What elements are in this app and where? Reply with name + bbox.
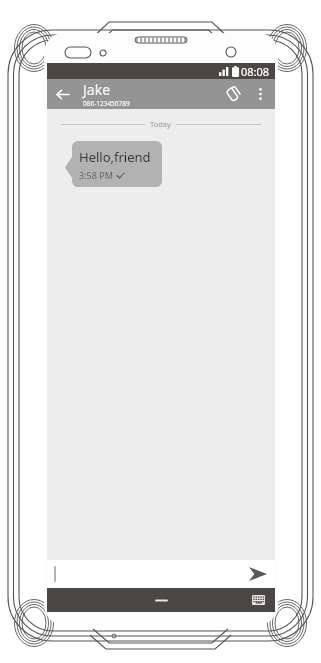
button[interactable]: Back [47, 79, 77, 109]
staticText: Today [150, 119, 171, 129]
button[interactable]: Keyboard [247, 589, 269, 611]
staticText: 086-123456789 [83, 99, 130, 108]
staticText: 08:08 [241, 64, 270, 79]
staticText: 3:58 PM [79, 169, 113, 181]
button[interactable]: Attach [217, 79, 247, 109]
button[interactable]: Send [245, 562, 271, 586]
staticText: Hello,friend [79, 148, 151, 166]
button[interactable]: Hello,friend [72, 141, 162, 187]
button[interactable]: Jake [77, 80, 217, 108]
button[interactable]: More options [247, 81, 273, 107]
button[interactable]: Back [146, 588, 176, 612]
button[interactable] [51, 562, 245, 586]
staticText: Jake [83, 80, 111, 99]
